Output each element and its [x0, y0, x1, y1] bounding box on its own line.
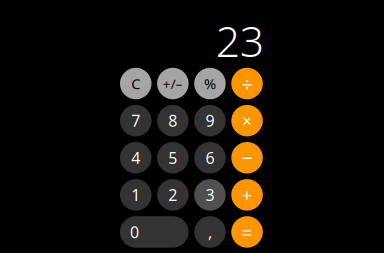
staticText: 6 — [205, 147, 214, 168]
staticText: 8 — [168, 110, 177, 131]
button[interactable]: 8 — [157, 105, 189, 136]
button[interactable]: Add — [231, 179, 263, 211]
button[interactable]: 5 — [157, 142, 189, 173]
staticText: % — [204, 74, 216, 93]
staticText: ÷ — [242, 70, 253, 97]
button[interactable]: Decimal separator — [194, 216, 226, 248]
staticText: +/– — [163, 75, 183, 92]
staticText: 5 — [168, 147, 177, 168]
button[interactable]: 9 — [194, 105, 226, 136]
button[interactable]: Change sign — [157, 68, 189, 99]
staticText: − — [242, 144, 253, 171]
staticText: + — [242, 182, 253, 207]
button[interactable]: Divide — [231, 68, 263, 99]
button[interactable]: 1 — [120, 179, 151, 211]
staticText: 23 — [216, 12, 264, 69]
staticText: , — [208, 221, 212, 242]
button[interactable]: 4 — [120, 142, 151, 173]
staticText: 0 — [130, 221, 139, 242]
staticText: 9 — [205, 110, 214, 131]
button[interactable]: 3 — [194, 179, 226, 211]
staticText: 7 — [131, 110, 140, 131]
button[interactable]: 2 — [157, 179, 189, 211]
button[interactable]: 0 — [120, 216, 189, 248]
button[interactable]: Multiply — [231, 105, 263, 136]
button[interactable]: Equals — [231, 216, 263, 248]
staticText: C — [131, 74, 140, 93]
button[interactable]: 7 — [120, 105, 151, 136]
staticText: 3 — [205, 184, 214, 205]
button[interactable]: 6 — [194, 142, 226, 173]
staticText: 2 — [168, 184, 177, 205]
button[interactable]: Clear — [120, 68, 151, 99]
staticText: = — [242, 220, 253, 244]
staticText: × — [242, 109, 252, 132]
staticText: 1 — [131, 184, 140, 205]
button[interactable]: Percent — [194, 68, 226, 99]
button[interactable]: Subtract — [231, 142, 263, 173]
staticText: 4 — [131, 147, 140, 168]
